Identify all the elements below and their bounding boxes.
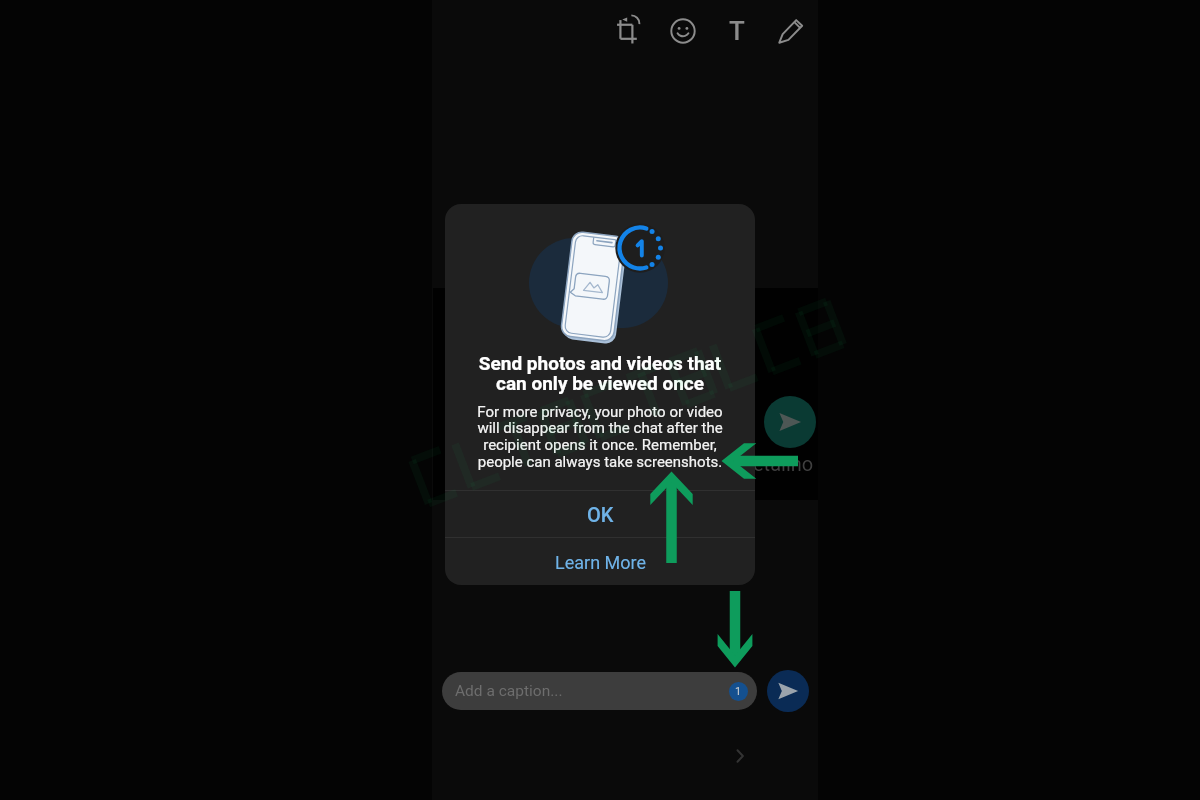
staticText: Learn More <box>555 552 646 573</box>
staticText: Send photos and videos that can only be … <box>445 352 755 395</box>
button[interactable]: Add sticker <box>656 4 710 58</box>
button[interactable]: Send <box>767 670 809 712</box>
button[interactable]: Crop and rotate <box>602 4 656 58</box>
staticText: 1 <box>735 685 742 698</box>
button[interactable]: Add text <box>710 4 764 58</box>
button[interactable]: Send photo <box>764 396 816 448</box>
staticText: For more privacy, your photo or video wi… <box>445 403 755 471</box>
button[interactable]: Next <box>724 740 756 772</box>
staticText: T <box>729 16 745 46</box>
button[interactable]: Add a caption... <box>442 672 757 710</box>
button[interactable]: Learn More <box>445 539 755 585</box>
staticText: OK <box>587 503 614 526</box>
button[interactable]: Draw <box>764 4 818 58</box>
button[interactable]: OK <box>445 491 755 538</box>
staticText: Add a caption... <box>455 682 563 700</box>
staticText: etaiino <box>753 452 814 475</box>
